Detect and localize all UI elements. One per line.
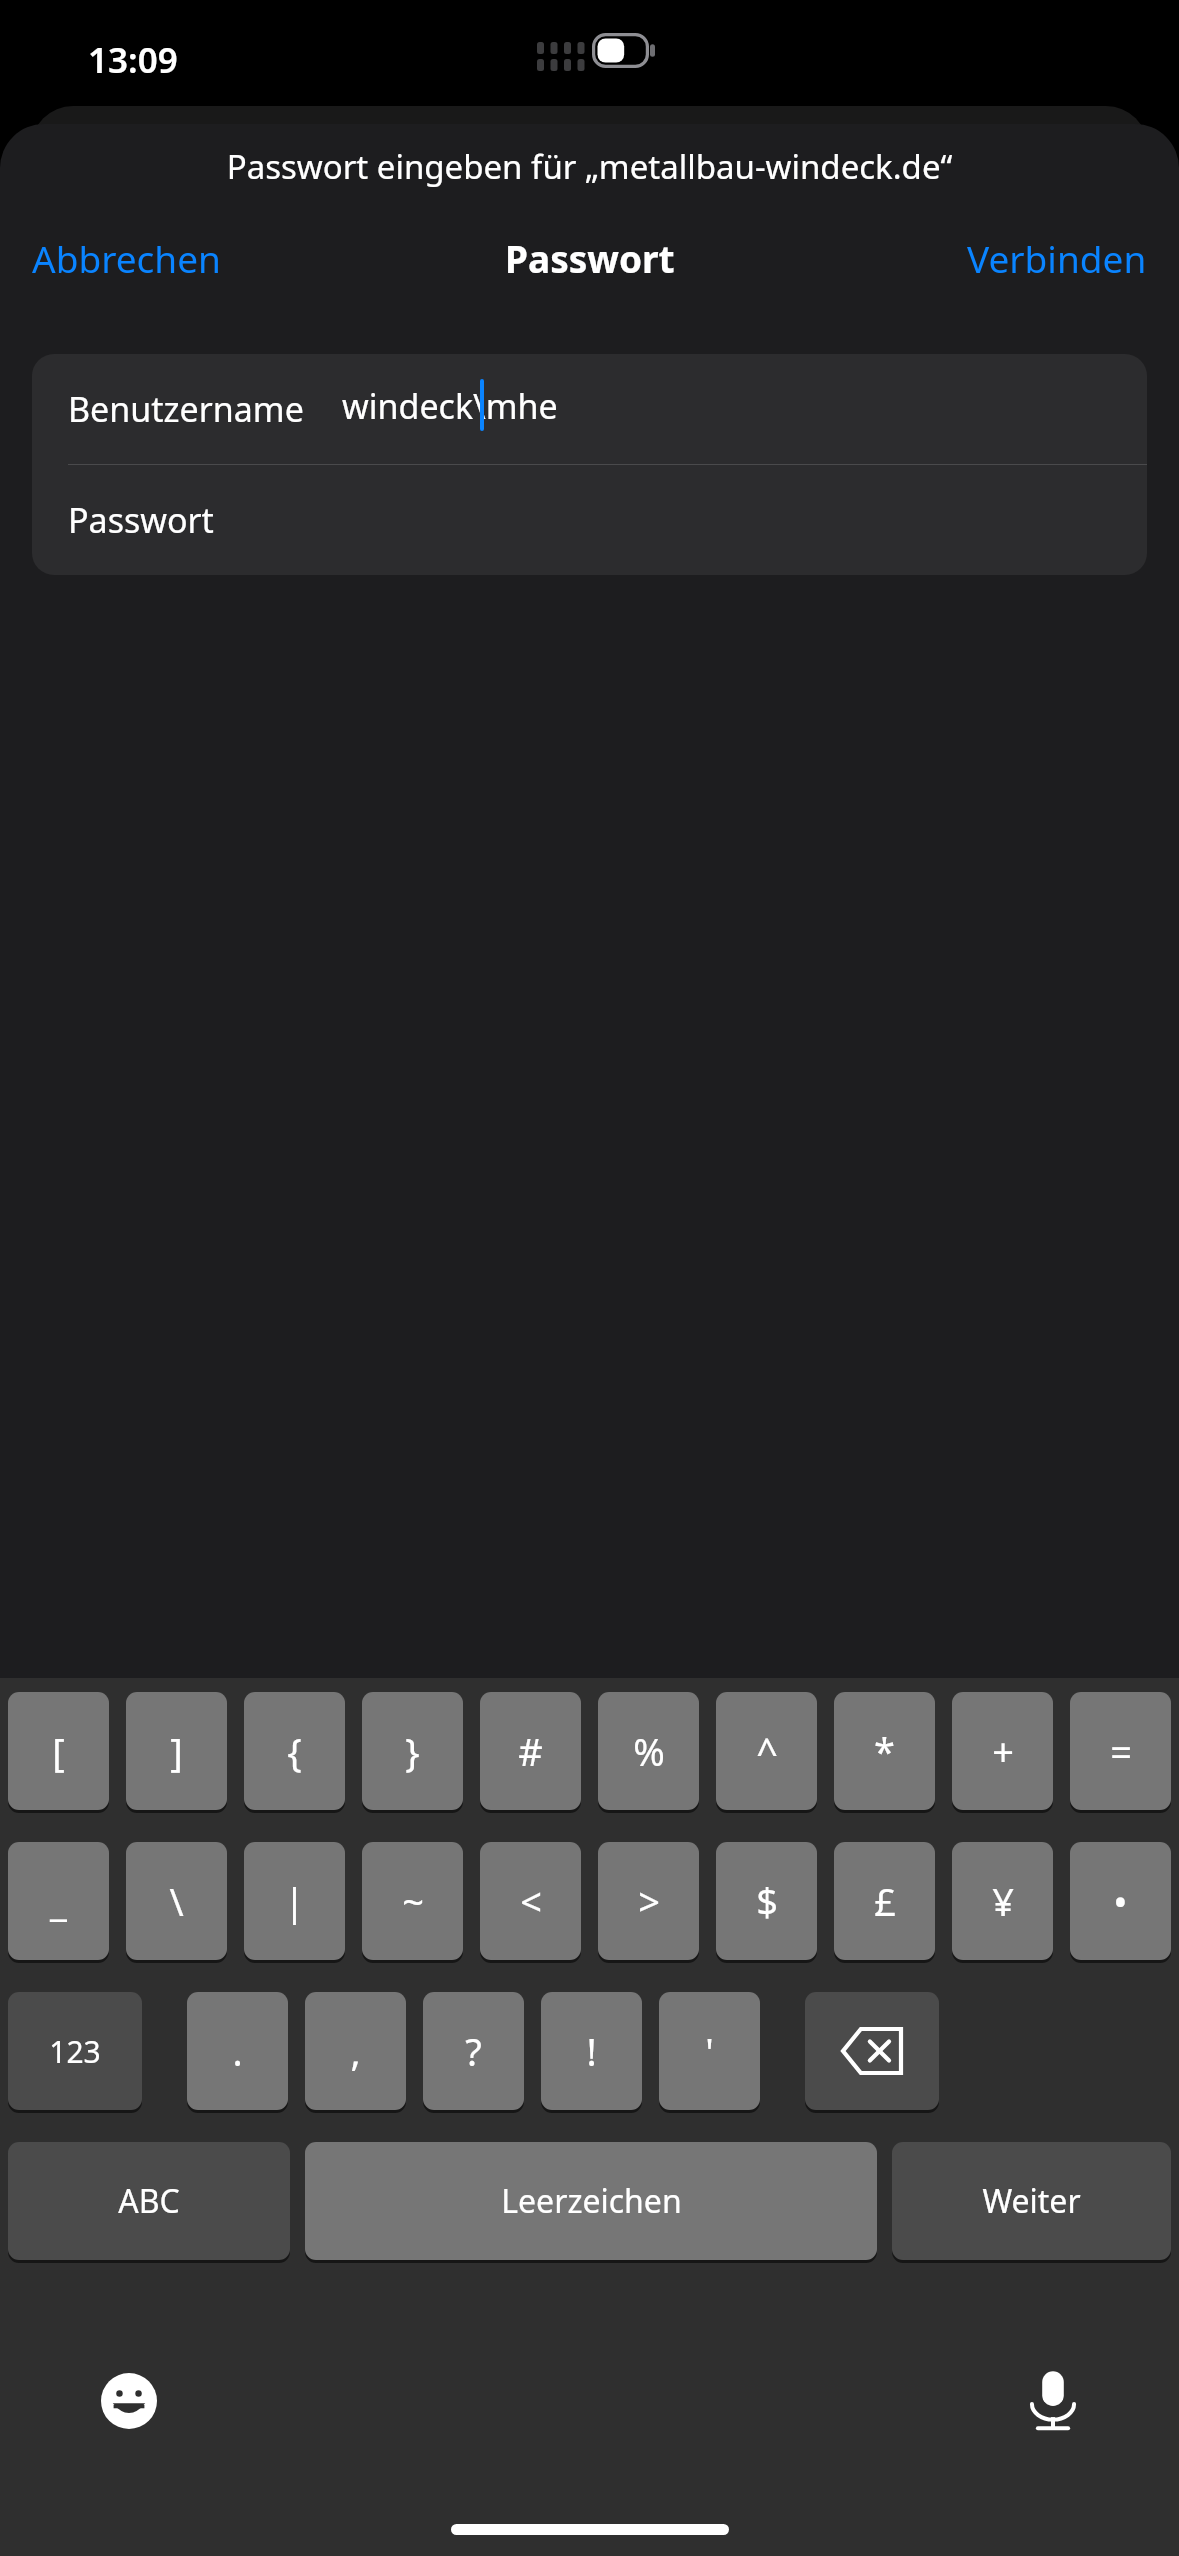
button[interactable]: \ [126, 1842, 227, 1963]
staticText: Weiter [982, 2179, 1081, 2223]
staticText: 13:09 [88, 36, 178, 84]
staticText: Passwort [505, 233, 675, 283]
button[interactable]: Diktat [1020, 2368, 1086, 2434]
staticText: } [405, 1725, 420, 1777]
staticText: ¥ [992, 1875, 1014, 1927]
staticText: * [874, 1725, 895, 1777]
staticText: ~ [402, 1875, 424, 1927]
button[interactable]: + [952, 1692, 1053, 1813]
staticText: ' [705, 2025, 714, 2077]
button[interactable]: $ [716, 1842, 817, 1963]
button[interactable]: Leerzeichen [305, 2142, 877, 2263]
button[interactable]: Weiter [892, 2142, 1171, 2263]
staticText: windeck\mhe [342, 383, 558, 429]
staticText: Passwort eingeben für „metallbau-windeck… [0, 144, 1179, 189]
button[interactable]: < [480, 1842, 581, 1963]
button[interactable]: % [598, 1692, 699, 1813]
button[interactable]: ' [659, 1992, 760, 2113]
button[interactable]: Emoji [96, 2368, 162, 2434]
staticText: . [232, 2025, 243, 2077]
staticText: > [638, 1875, 660, 1927]
staticText: < [520, 1875, 542, 1927]
button[interactable]: > [598, 1842, 699, 1963]
staticText: 123 [49, 2031, 101, 2072]
staticText: $ [756, 1875, 778, 1927]
button[interactable]: • [1070, 1842, 1171, 1963]
staticText: Leerzeichen [501, 2179, 682, 2223]
staticText: ] [170, 1725, 183, 1777]
button[interactable]: Passwort [32, 465, 1147, 575]
staticText: Verbinden [967, 233, 1147, 283]
staticText: ? [465, 2025, 482, 2077]
button[interactable]: ¥ [952, 1842, 1053, 1963]
staticText: # [518, 1725, 543, 1777]
button[interactable]: ! [541, 1992, 642, 2113]
staticText: _ [50, 1875, 67, 1927]
button[interactable]: ] [126, 1692, 227, 1813]
button[interactable]: . [187, 1992, 288, 2113]
button[interactable]: [ [8, 1692, 109, 1813]
staticText: = [1110, 1725, 1132, 1777]
staticText: £ [874, 1875, 896, 1927]
staticText: [ [52, 1725, 65, 1777]
button[interactable]: Abbrechen [18, 223, 235, 293]
staticText: Benutzername [68, 386, 304, 432]
button[interactable]: Löschen [805, 1992, 939, 2113]
staticText: + [992, 1725, 1014, 1777]
button[interactable]: ABC [8, 2142, 290, 2263]
button[interactable]: * [834, 1692, 935, 1813]
staticText: Passwort [68, 497, 214, 543]
button[interactable]: _ [8, 1842, 109, 1963]
button[interactable]: ^ [716, 1692, 817, 1813]
button[interactable]: Verbinden [953, 223, 1161, 293]
staticText: \ [169, 1875, 184, 1927]
button[interactable]: 123 [8, 1992, 142, 2113]
staticText: | [284, 1875, 305, 1927]
staticText: ! [586, 2025, 597, 2077]
staticText: ^ [756, 1725, 778, 1777]
button[interactable]: = [1070, 1692, 1171, 1813]
button[interactable]: # [480, 1692, 581, 1813]
staticText: % [633, 1725, 665, 1777]
button[interactable]: | [244, 1842, 345, 1963]
staticText: , [350, 2025, 361, 2077]
staticText: ABC [118, 2179, 180, 2223]
button[interactable]: } [362, 1692, 463, 1813]
button[interactable]: £ [834, 1842, 935, 1963]
button[interactable]: ~ [362, 1842, 463, 1963]
button[interactable]: { [244, 1692, 345, 1813]
staticText: Abbrechen [32, 233, 221, 283]
button[interactable]: ? [423, 1992, 524, 2113]
button[interactable]: , [305, 1992, 406, 2113]
staticText: { [287, 1725, 302, 1777]
staticText: • [1113, 1875, 1128, 1927]
button[interactable]: Benutzername [32, 354, 1147, 464]
